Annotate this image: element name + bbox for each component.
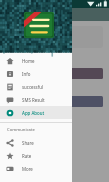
other: More bbox=[6, 165, 14, 173]
other: Info bbox=[6, 70, 14, 78]
button[interactable]: Rate bbox=[0, 149, 72, 162]
staticText: Rate bbox=[22, 153, 32, 159]
staticText: More bbox=[22, 166, 33, 172]
staticText: পরীক্ষার ফলাফল দেখুন bbox=[6, 59, 36, 65]
button[interactable] bbox=[6, 68, 103, 79]
button[interactable]: Info bbox=[0, 67, 72, 80]
staticText: Home bbox=[22, 58, 35, 64]
other: App About bbox=[6, 109, 14, 117]
staticText: Info bbox=[22, 71, 31, 77]
staticText: App About bbox=[22, 110, 45, 116]
staticText: আবেদন করুন bbox=[6, 87, 25, 93]
staticText: Share bbox=[22, 140, 34, 146]
button[interactable]: Home bbox=[0, 54, 72, 67]
staticText: SMS Result bbox=[22, 97, 45, 103]
staticText: successful bbox=[22, 84, 44, 90]
button[interactable]: App About bbox=[0, 106, 72, 119]
staticText: Communicate bbox=[7, 127, 35, 133]
other: Share bbox=[6, 139, 14, 147]
button[interactable]: SMS Result bbox=[0, 93, 72, 106]
button[interactable]: More bbox=[0, 162, 72, 175]
button[interactable]: Successful bbox=[0, 80, 72, 93]
button[interactable] bbox=[6, 96, 103, 107]
other: Rate bbox=[6, 152, 14, 160]
other: Successful bbox=[6, 83, 14, 91]
other: Home bbox=[6, 57, 14, 65]
button[interactable]: Share bbox=[0, 136, 72, 149]
other: SMS Result bbox=[6, 96, 14, 104]
